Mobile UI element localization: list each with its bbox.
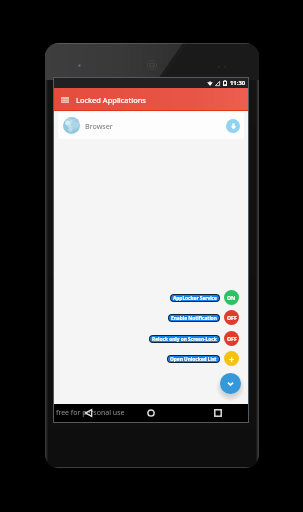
- staticText: 11:30: [230, 79, 246, 87]
- button[interactable]: Back: [79, 404, 97, 422]
- button[interactable]: Open Unlocked List: [168, 356, 219, 362]
- staticText: Relock only on Screen-Lock: [152, 336, 217, 342]
- staticText: +: [229, 353, 235, 365]
- staticText: free for personal use: [56, 408, 125, 418]
- button[interactable]: Close actions menu: [220, 373, 241, 394]
- staticText: Browser: [85, 121, 113, 131]
- staticText: ON: [227, 294, 236, 301]
- button[interactable]: Enable Notification: [169, 315, 219, 321]
- button[interactable]: Relock only on Screen-Lock: [150, 336, 219, 342]
- button[interactable]: AppLocker Service: [171, 295, 219, 301]
- button[interactable]: +: [224, 351, 239, 366]
- staticText: Locked Applications: [76, 95, 146, 105]
- staticText: OFF: [227, 335, 237, 342]
- button[interactable]: Home: [142, 404, 160, 422]
- button[interactable]: Browser: [58, 112, 244, 139]
- staticText: Open Unlocked List: [170, 356, 217, 362]
- button[interactable]: Open navigation menu: [54, 88, 76, 111]
- staticText: Enable Notification: [171, 315, 217, 321]
- staticText: OFF: [227, 314, 237, 321]
- button[interactable]: OFF: [224, 331, 239, 346]
- button[interactable]: ON: [224, 290, 239, 305]
- button[interactable]: Download: [226, 119, 240, 133]
- staticText: AppLocker Service: [173, 295, 217, 301]
- button[interactable]: Recent apps: [209, 404, 227, 422]
- button[interactable]: OFF: [224, 310, 239, 325]
